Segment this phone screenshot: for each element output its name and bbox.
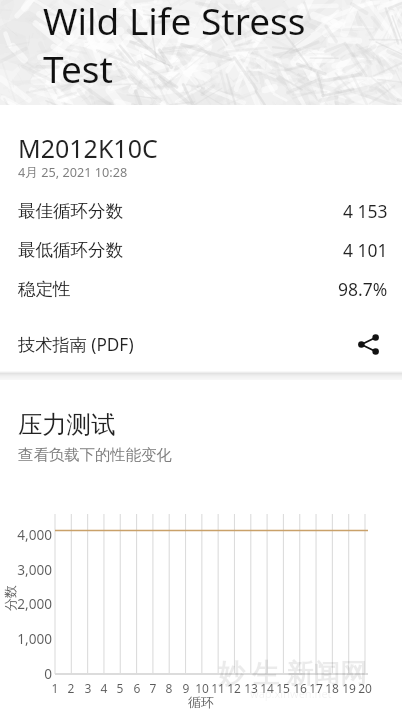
staticText: 17: [306, 680, 326, 696]
button[interactable]: 最佳循环分数: [0, 191, 402, 230]
staticText: 分数: [2, 578, 18, 618]
staticText: 13: [241, 680, 261, 696]
staticText: 20: [355, 680, 375, 696]
staticText: Wild Life Stress Test: [43, 0, 306, 94]
staticText: 查看负载下的性能变化: [18, 445, 172, 464]
staticText: 7: [143, 680, 163, 696]
button[interactable]: 最低循环分数: [0, 230, 402, 269]
staticText: 15: [273, 680, 293, 696]
staticText: 18: [322, 680, 342, 696]
staticText: 4 153: [343, 199, 388, 223]
staticText: wap.xinwen.net: [250, 686, 332, 701]
staticText: 14: [257, 680, 277, 696]
staticText: 8: [159, 680, 179, 696]
staticText: 最低循环分数: [18, 239, 123, 261]
staticText: 98.7%: [338, 277, 388, 301]
button[interactable]: 稳定性: [0, 269, 402, 308]
staticText: 19: [339, 680, 359, 696]
staticText: 6: [127, 680, 147, 696]
staticText: 4,000: [0, 525, 52, 544]
staticText: 稳定性: [18, 278, 71, 300]
staticText: 9: [176, 680, 196, 696]
staticText: M2012K10C: [18, 131, 158, 165]
staticText: 技术指南 (PDF): [18, 333, 134, 356]
staticText: 1,000: [0, 629, 52, 648]
staticText: 2,000: [0, 594, 52, 613]
staticText: 3,000: [0, 560, 52, 579]
staticText: 2: [61, 680, 81, 696]
staticText: 11: [208, 680, 228, 696]
staticText: 1: [45, 680, 65, 696]
staticText: 10: [192, 680, 212, 696]
staticText: 4 101: [343, 238, 388, 262]
staticText: 0: [0, 664, 52, 683]
staticText: 12: [224, 680, 244, 696]
staticText: 妙 生 新闻网: [218, 654, 368, 691]
staticText: 4: [94, 680, 114, 696]
staticText: 16: [290, 680, 310, 696]
staticText: 循环: [188, 694, 214, 710]
staticText: 3: [78, 680, 98, 696]
staticText: 最佳循环分数: [18, 200, 123, 222]
staticText: 4月 25, 2021 10:28: [18, 163, 128, 180]
staticText: 压力测试: [18, 410, 116, 441]
button[interactable]: Share: [352, 328, 384, 360]
button[interactable]: 技术指南 (PDF): [0, 321, 402, 367]
staticText: 5: [110, 680, 130, 696]
